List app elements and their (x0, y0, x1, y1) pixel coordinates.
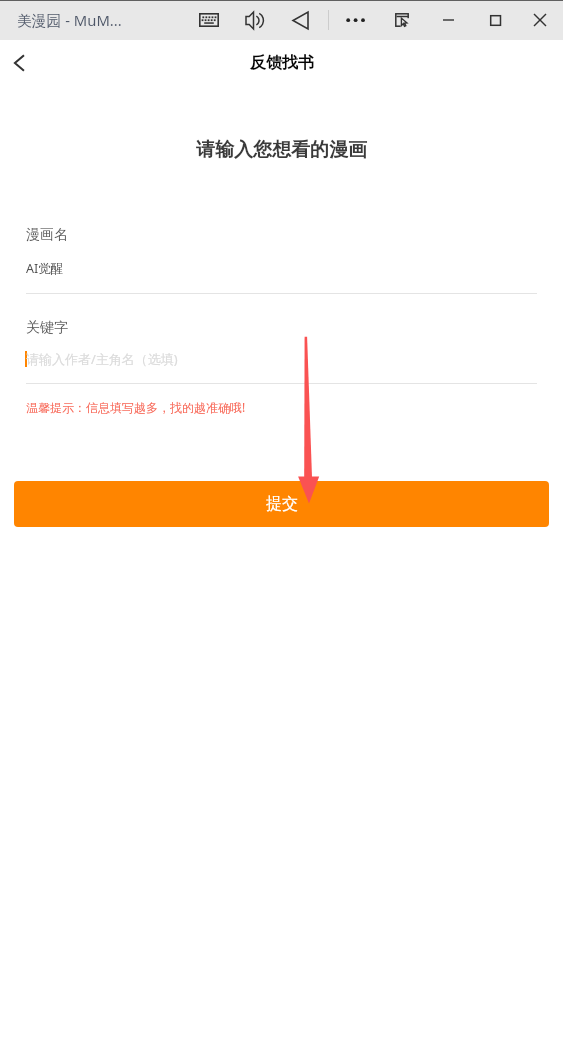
staticText: 关键字 (26, 319, 68, 337)
button[interactable]: Back (0, 41, 38, 85)
button[interactable]: Detach window (382, 0, 422, 40)
button[interactable]: 关键字 (0, 319, 563, 384)
staticText: 提交 (266, 494, 298, 514)
button[interactable]: More options (336, 0, 376, 40)
staticText: 反馈找书 (250, 53, 314, 73)
staticText: 温馨提示：信息填写越多，找的越准确哦! (26, 399, 246, 415)
button[interactable]: Volume (235, 0, 275, 40)
button[interactable]: Maximize (475, 0, 515, 40)
button[interactable]: 提交 (14, 481, 549, 527)
button[interactable]: Close (520, 0, 560, 40)
button[interactable]: 漫画名 (0, 226, 563, 294)
button[interactable]: Keyboard (189, 0, 229, 40)
staticText: AI觉醒 (26, 260, 64, 277)
button[interactable]: Minimize (428, 0, 468, 40)
button[interactable]: Back (281, 0, 321, 40)
staticText: 请输入作者/主角名（选填) (26, 350, 178, 368)
staticText: 请输入您想看的漫画 (0, 138, 563, 162)
staticText: 美漫园 - MuM... (17, 10, 122, 30)
staticText: 漫画名 (26, 226, 68, 244)
